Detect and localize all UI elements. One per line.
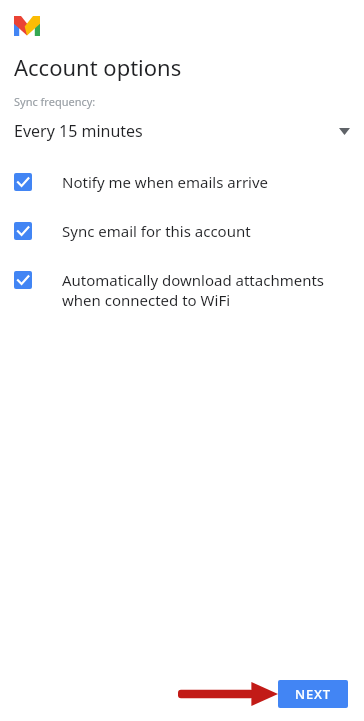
staticText: Sync email for this account <box>62 221 251 241</box>
button[interactable]: Every 15 minutes <box>0 109 364 142</box>
button[interactable]: Notify me when emails arrive <box>0 142 364 192</box>
staticText: Notify me when emails arrive <box>62 172 269 192</box>
staticText: Account options <box>14 52 182 82</box>
button[interactable]: NEXT <box>278 680 348 708</box>
staticText: Sync frequency: <box>14 94 96 109</box>
staticText: Every 15 minutes <box>14 120 143 142</box>
button[interactable]: Sync email for this account <box>0 192 364 241</box>
staticText: Automatically download attachments when … <box>62 270 350 310</box>
button[interactable]: Automatically download attachments when … <box>0 241 364 310</box>
other: Open sync frequency menu <box>339 128 350 135</box>
staticText: NEXT <box>295 685 331 703</box>
